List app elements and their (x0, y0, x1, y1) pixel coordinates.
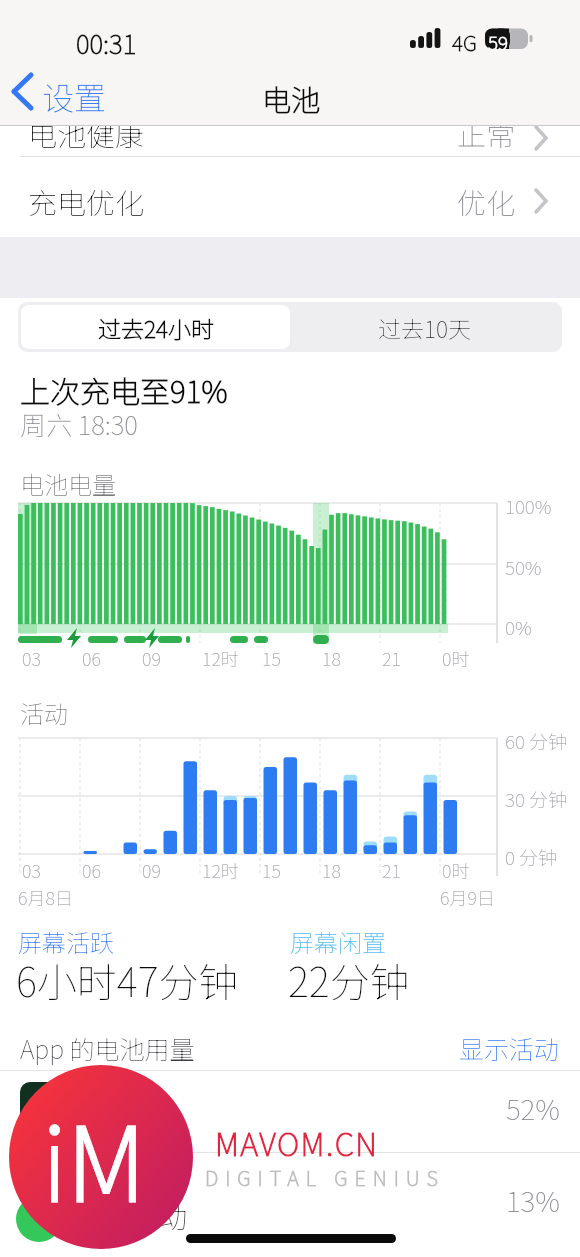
staticText: 50% (505, 553, 542, 581)
staticText: DIGITAL GENIUS (205, 1163, 445, 1192)
staticText: 03 (22, 645, 41, 671)
button[interactable] (0, 120, 580, 156)
staticText: 21 (382, 645, 401, 671)
staticText: 12时 (202, 645, 239, 671)
staticText: 52% (506, 1088, 560, 1129)
staticText: 00:31 (76, 24, 137, 62)
staticText: 59 (488, 28, 508, 56)
staticText: 4G (452, 27, 477, 57)
staticText: 0时 (442, 857, 470, 883)
staticText: 周六 18:30 (20, 405, 138, 443)
staticText: 动 (158, 1194, 188, 1236)
staticText: 正常 (457, 112, 516, 154)
staticText: 0% (505, 613, 532, 641)
staticText: 屏幕闲置 (290, 924, 386, 959)
staticText: 18 (322, 857, 341, 883)
staticText: 过去10天 (378, 311, 471, 344)
staticText: MAVOM.CN (215, 1120, 379, 1165)
staticText: 15 (262, 857, 281, 883)
staticText: 09 (142, 645, 161, 671)
button[interactable]: 过去24小时 (21, 305, 290, 349)
staticText: 21 (382, 857, 401, 883)
staticText: 活动 (20, 695, 68, 730)
staticText: 12时 (202, 857, 239, 883)
staticText: 0时 (442, 645, 470, 671)
staticText: 03 (22, 857, 41, 883)
staticText: 13% (506, 1180, 560, 1221)
staticText: 15 (262, 645, 281, 671)
staticText: 60 分钟 (505, 727, 567, 755)
staticText: 18 (322, 645, 341, 671)
staticText: 设置 (42, 73, 107, 119)
staticText: 6小时47分钟 (16, 951, 239, 1009)
staticText: 6月9日 (440, 884, 495, 910)
button[interactable]: 过去10天 (290, 305, 559, 349)
staticText: 06 (82, 645, 101, 671)
button[interactable] (0, 157, 580, 236)
button[interactable] (0, 1072, 580, 1152)
staticText: 电池健康 (28, 112, 145, 154)
button[interactable] (455, 1025, 570, 1065)
staticText: 100% (505, 492, 552, 520)
staticText: 06 (82, 857, 101, 883)
staticText: 过去24小时 (98, 311, 214, 344)
staticText: 22分钟 (288, 951, 410, 1009)
staticText: 显示活动 (459, 1030, 560, 1066)
staticText: 充电优化 (28, 180, 145, 222)
staticText: 电池 (262, 77, 321, 119)
staticText: 优化 (457, 180, 516, 222)
staticText: 屏幕活跃 (18, 924, 114, 959)
staticText: App 的电池用量 (20, 1030, 195, 1066)
button[interactable] (0, 1155, 580, 1247)
staticText: 09 (142, 857, 161, 883)
staticText: 0 分钟 (505, 843, 558, 871)
staticText: 电池电量 (20, 466, 116, 501)
staticText: 6月8日 (18, 884, 73, 910)
staticText: 上次充电至91% (20, 368, 228, 411)
staticText: iM (42, 1083, 146, 1231)
button[interactable] (10, 70, 120, 116)
staticText: 30 分钟 (505, 785, 567, 813)
